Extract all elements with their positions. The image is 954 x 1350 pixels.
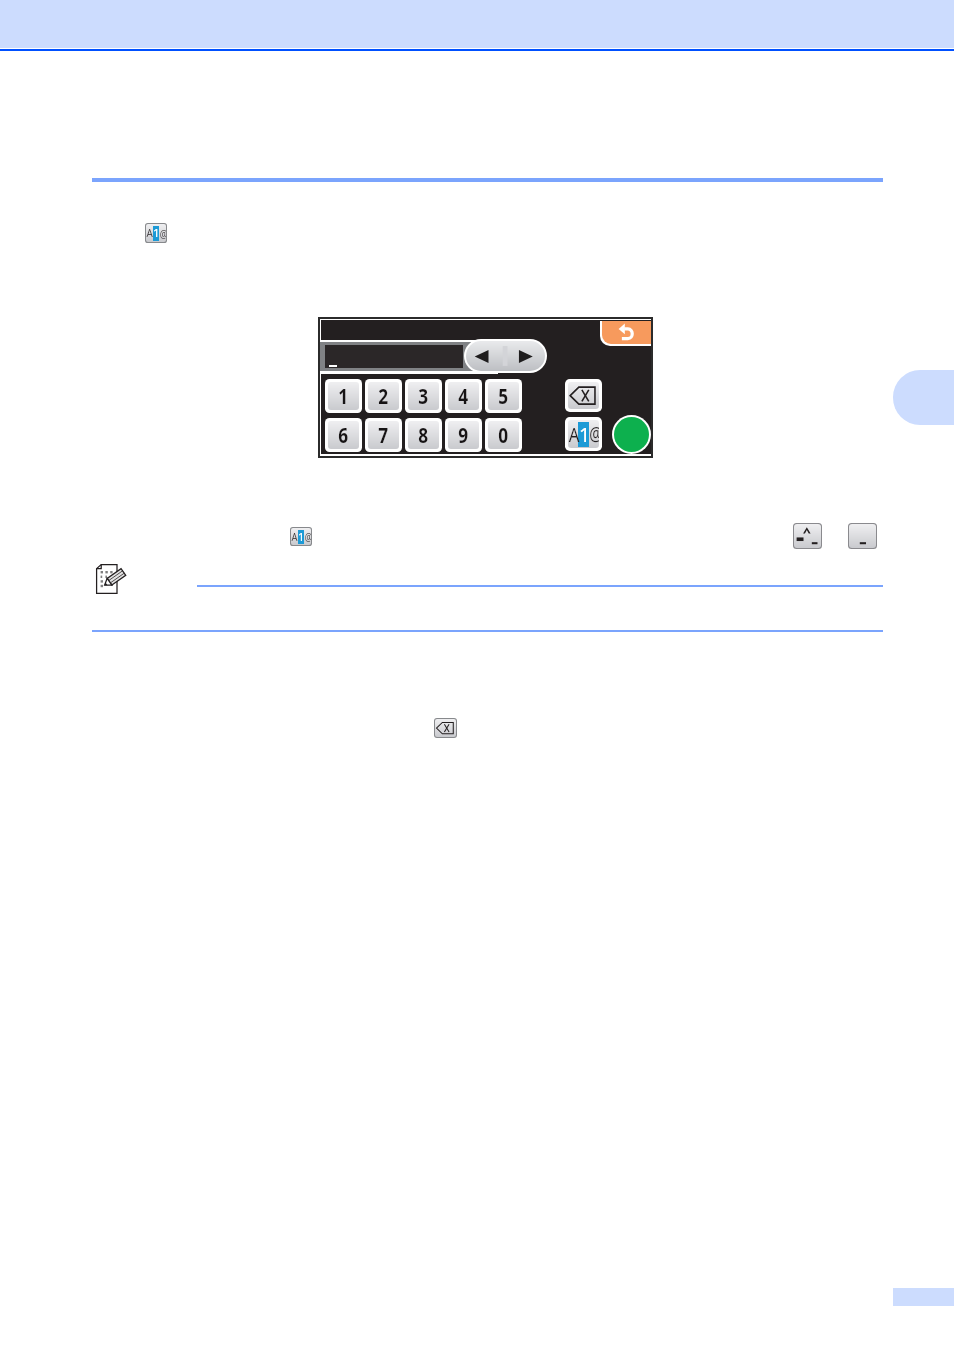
staticText: 3 (418, 382, 429, 410)
staticText: 1 (298, 529, 304, 544)
button[interactable]: Backspace (435, 719, 456, 737)
other: Note (95, 563, 127, 595)
button[interactable]: 9 (448, 421, 479, 449)
staticText: A (569, 421, 578, 448)
button[interactable]: OK (614, 417, 649, 452)
button[interactable]: 8 (408, 421, 439, 449)
button[interactable]: 6 (328, 421, 359, 449)
staticText: A (146, 225, 152, 241)
button[interactable]: 4 (448, 382, 479, 410)
button[interactable]: Switch character type (568, 420, 599, 448)
button[interactable]: Switch character type (291, 528, 311, 545)
staticText: 9 (458, 421, 469, 449)
button[interactable]: Switch character type (146, 224, 166, 242)
button[interactable]: Space (849, 524, 876, 548)
staticText: 2 (378, 382, 389, 410)
staticText: 4 (458, 382, 469, 410)
staticText: 6 (338, 421, 349, 449)
staticText: 5 (498, 382, 509, 410)
staticText: 0 (498, 421, 509, 449)
button[interactable]: Move cursor (466, 341, 545, 371)
button[interactable]: 3 (408, 382, 439, 410)
button[interactable]: 1 (328, 382, 359, 410)
button[interactable]: Shift (794, 524, 821, 548)
button[interactable]: 2 (368, 382, 399, 410)
staticText: 1 (153, 225, 159, 241)
button[interactable]: Back (602, 321, 652, 344)
button[interactable]: 0 (488, 421, 519, 449)
staticText: 7 (378, 421, 389, 449)
staticText: 8 (418, 421, 429, 449)
button[interactable]: 5 (488, 382, 519, 410)
staticText: A (291, 529, 297, 544)
staticText: @ (305, 530, 310, 544)
staticText: 1 (338, 382, 349, 410)
staticText: 1 (579, 421, 588, 448)
button[interactable]: Backspace (568, 382, 599, 409)
staticText: @ (160, 226, 165, 241)
button[interactable]: 7 (368, 421, 399, 449)
staticText: @ (589, 421, 598, 447)
